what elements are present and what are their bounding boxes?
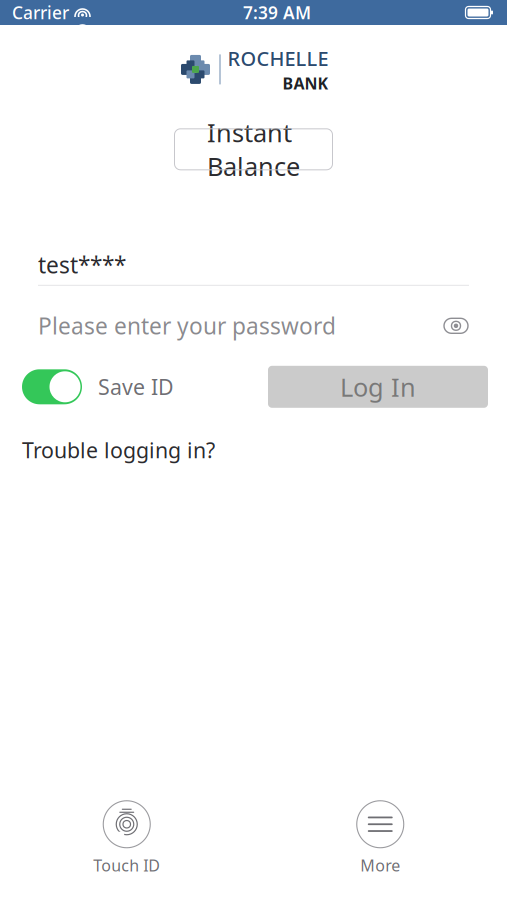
- button[interactable]: More: [325, 801, 435, 876]
- staticText: test****: [38, 250, 126, 280]
- button[interactable]: Show password: [443, 313, 469, 339]
- staticText: Carrier: [12, 1, 69, 24]
- staticText: Instant Balance: [207, 116, 300, 183]
- staticText: ROCHELLE: [227, 45, 328, 72]
- staticText: Log In: [340, 370, 416, 404]
- button[interactable]: Instant Balance: [174, 129, 332, 170]
- staticText: Trouble logging in?: [22, 436, 215, 464]
- staticText: Touch ID: [93, 855, 160, 876]
- staticText: Please enter your password: [38, 311, 336, 341]
- button[interactable]: Trouble logging in?: [22, 436, 215, 464]
- staticText: Save ID: [98, 373, 174, 401]
- staticText: More: [360, 855, 400, 876]
- staticText: BANK: [282, 73, 328, 94]
- staticText: 7:39 AM: [243, 1, 311, 24]
- button[interactable]: Touch ID: [72, 801, 182, 876]
- button[interactable]: Log In: [268, 366, 488, 408]
- button[interactable]: Save ID: [22, 369, 174, 404]
